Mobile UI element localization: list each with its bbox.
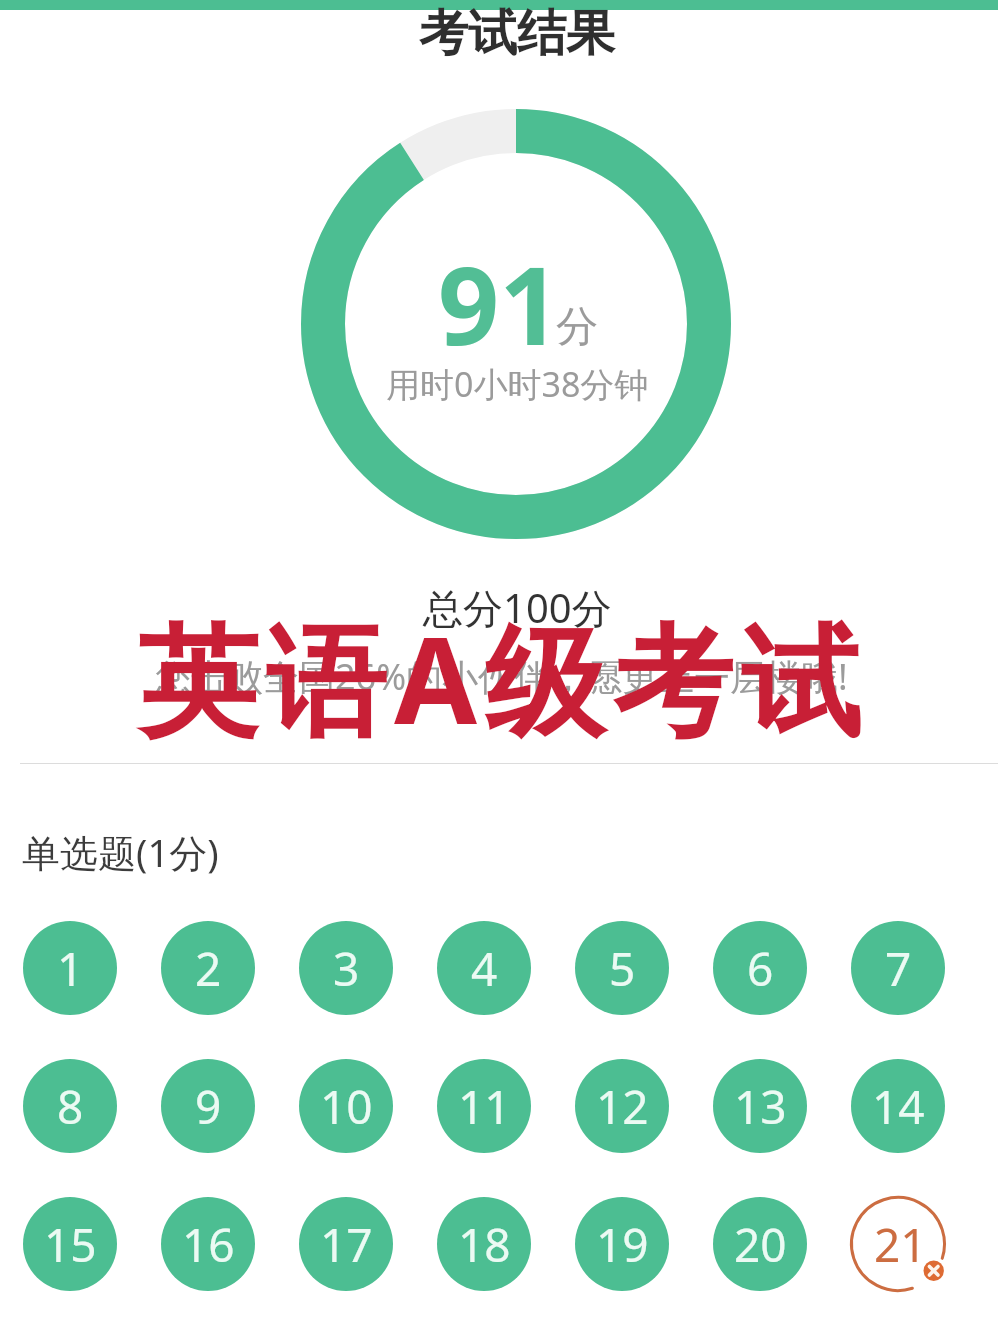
staticText: 21	[874, 1213, 927, 1276]
staticText: 5	[609, 937, 636, 1000]
staticText: 您击败全国26%的小伙伴，愿更上一层楼哦!	[155, 652, 848, 701]
button[interactable]: 8	[23, 1059, 117, 1153]
staticText: 10	[320, 1075, 373, 1138]
button[interactable]: 3	[299, 921, 393, 1015]
staticText: 考试结果	[419, 3, 615, 65]
button[interactable]: 11	[437, 1059, 531, 1153]
staticText: 11	[458, 1075, 511, 1138]
button[interactable]: 9	[161, 1059, 255, 1153]
staticText: 15	[44, 1213, 97, 1276]
staticText: 用时0小时38分钟	[386, 361, 649, 407]
button[interactable]: 20	[713, 1197, 807, 1291]
staticText: 13	[734, 1075, 787, 1138]
button[interactable]: 14	[851, 1059, 945, 1153]
button[interactable]: 2	[161, 921, 255, 1015]
button[interactable]: 15	[23, 1197, 117, 1291]
staticText: 17	[320, 1213, 373, 1276]
staticText: 6	[747, 937, 774, 1000]
button[interactable]: 16	[161, 1197, 255, 1291]
staticText: 4	[471, 937, 498, 1000]
button[interactable]: 12	[575, 1059, 669, 1153]
button[interactable]: 10	[299, 1059, 393, 1153]
button[interactable]: 6	[713, 921, 807, 1015]
staticText: 英语A级考试	[138, 596, 870, 760]
button[interactable]: 19	[575, 1197, 669, 1291]
staticText: 单选题(1分)	[22, 826, 219, 878]
staticText: 18	[458, 1213, 511, 1276]
staticText: 91	[438, 231, 561, 377]
staticText: 2	[195, 937, 222, 1000]
button[interactable]: 5	[575, 921, 669, 1015]
staticText: 1	[57, 937, 84, 1000]
staticText: 12	[596, 1075, 649, 1138]
staticText: 20	[734, 1213, 787, 1276]
staticText: 总分100分	[423, 580, 612, 635]
staticText: 19	[596, 1213, 649, 1276]
staticText: 3	[333, 937, 360, 1000]
staticText: 14	[872, 1075, 925, 1138]
staticText: 分	[556, 301, 598, 354]
button[interactable]: 13	[713, 1059, 807, 1153]
button[interactable]: 1	[23, 921, 117, 1015]
button[interactable]: 第21题 答错	[833, 1179, 963, 1309]
staticText: 9	[195, 1075, 222, 1138]
button[interactable]: 18	[437, 1197, 531, 1291]
staticText: 7	[885, 937, 912, 1000]
button[interactable]: 17	[299, 1197, 393, 1291]
staticText: 8	[57, 1075, 84, 1138]
button[interactable]: 4	[437, 921, 531, 1015]
button[interactable]: 7	[851, 921, 945, 1015]
staticText: 16	[182, 1213, 235, 1276]
